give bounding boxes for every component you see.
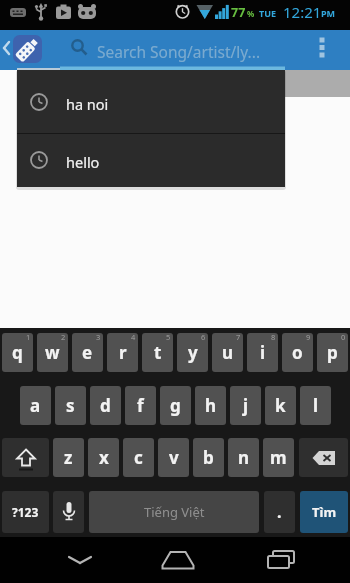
staticText: f	[137, 394, 144, 417]
button[interactable]: l	[300, 386, 331, 425]
button[interactable]: p	[317, 333, 348, 372]
button[interactable]	[53, 491, 84, 533]
staticText: s	[66, 394, 75, 417]
staticText: p	[327, 341, 338, 364]
button[interactable]: y	[177, 333, 208, 372]
button[interactable]	[299, 438, 348, 477]
staticText: b	[203, 446, 214, 469]
staticText: r	[119, 341, 127, 364]
staticText: q	[12, 341, 23, 364]
staticText: 2	[61, 332, 66, 342]
staticText: 9	[306, 332, 311, 342]
staticText: o	[292, 341, 303, 364]
staticText: TUE	[259, 7, 277, 19]
staticText: h	[205, 394, 217, 417]
button[interactable]: b	[193, 438, 224, 477]
button[interactable]: i	[247, 333, 278, 372]
staticText: 12:21	[283, 2, 322, 22]
staticText: 77	[231, 4, 246, 21]
button[interactable]: Tiếng Việt	[89, 491, 259, 533]
staticText: a	[30, 394, 41, 417]
button[interactable]: u	[212, 333, 243, 372]
staticText: d	[100, 394, 111, 417]
button[interactable]: v	[158, 438, 189, 477]
staticText: %	[247, 8, 255, 19]
button[interactable]: x	[88, 438, 119, 477]
button[interactable]: ha noi	[17, 70, 285, 133]
staticText: 5	[166, 332, 171, 342]
button[interactable]: hello	[17, 134, 285, 187]
button[interactable]: c	[123, 438, 154, 477]
staticText: w	[45, 341, 60, 364]
button[interactable]: t	[142, 333, 173, 372]
button[interactable]: h	[195, 386, 226, 425]
staticText: j	[243, 394, 249, 417]
button[interactable]	[153, 537, 203, 583]
staticText: i	[260, 341, 266, 364]
staticText: 0	[341, 332, 346, 342]
button[interactable]: .	[264, 491, 295, 533]
staticText: z	[64, 446, 73, 469]
button[interactable]: k	[265, 386, 296, 425]
staticText: 1	[26, 332, 31, 342]
button[interactable]: j	[230, 386, 261, 425]
button[interactable]: z	[53, 438, 84, 477]
staticText: u	[222, 341, 234, 364]
button[interactable]: n	[228, 438, 259, 477]
staticText: m	[270, 446, 287, 469]
staticText: Tiếng Việt	[144, 503, 205, 521]
button[interactable]: g	[160, 386, 191, 425]
staticText: n	[238, 446, 250, 469]
staticText: 3	[96, 332, 101, 342]
button[interactable]: Tìm	[300, 491, 348, 533]
staticText: PM	[321, 7, 336, 19]
button[interactable]: w	[37, 333, 68, 372]
button[interactable]	[0, 30, 46, 70]
staticText: g	[170, 394, 181, 417]
staticText: x	[99, 446, 109, 469]
staticText: l	[313, 394, 319, 417]
staticText: k	[275, 394, 286, 417]
button[interactable]	[305, 30, 350, 70]
button[interactable]: f	[125, 386, 156, 425]
button[interactable]: e	[72, 333, 103, 372]
staticText: 7	[236, 332, 241, 342]
button[interactable]: d	[90, 386, 121, 425]
staticText: ha noi	[66, 94, 109, 114]
staticText: y	[188, 341, 198, 364]
staticText: e	[82, 341, 93, 364]
staticText: Tìm	[312, 503, 337, 521]
staticText: hello	[66, 152, 100, 172]
staticText: v	[169, 446, 179, 469]
button[interactable]: o	[282, 333, 313, 372]
staticText: .	[277, 501, 282, 523]
button[interactable]: s	[55, 386, 86, 425]
staticText: 4	[131, 332, 136, 342]
staticText: Search Song/artist/ly...	[97, 41, 261, 62]
staticText: c	[134, 446, 143, 469]
button[interactable]: m	[263, 438, 294, 477]
staticText: 8	[271, 332, 276, 342]
staticText: ?123	[12, 504, 39, 520]
button[interactable]: a	[20, 386, 51, 425]
staticText: 6	[201, 332, 206, 342]
button[interactable]: r	[107, 333, 138, 372]
button[interactable]	[2, 438, 49, 477]
button[interactable]	[256, 537, 306, 583]
button[interactable]: ?123	[2, 491, 49, 533]
staticText: t	[154, 341, 162, 364]
button[interactable]: q	[2, 333, 33, 372]
button[interactable]	[55, 537, 105, 583]
button[interactable]	[60, 30, 285, 70]
